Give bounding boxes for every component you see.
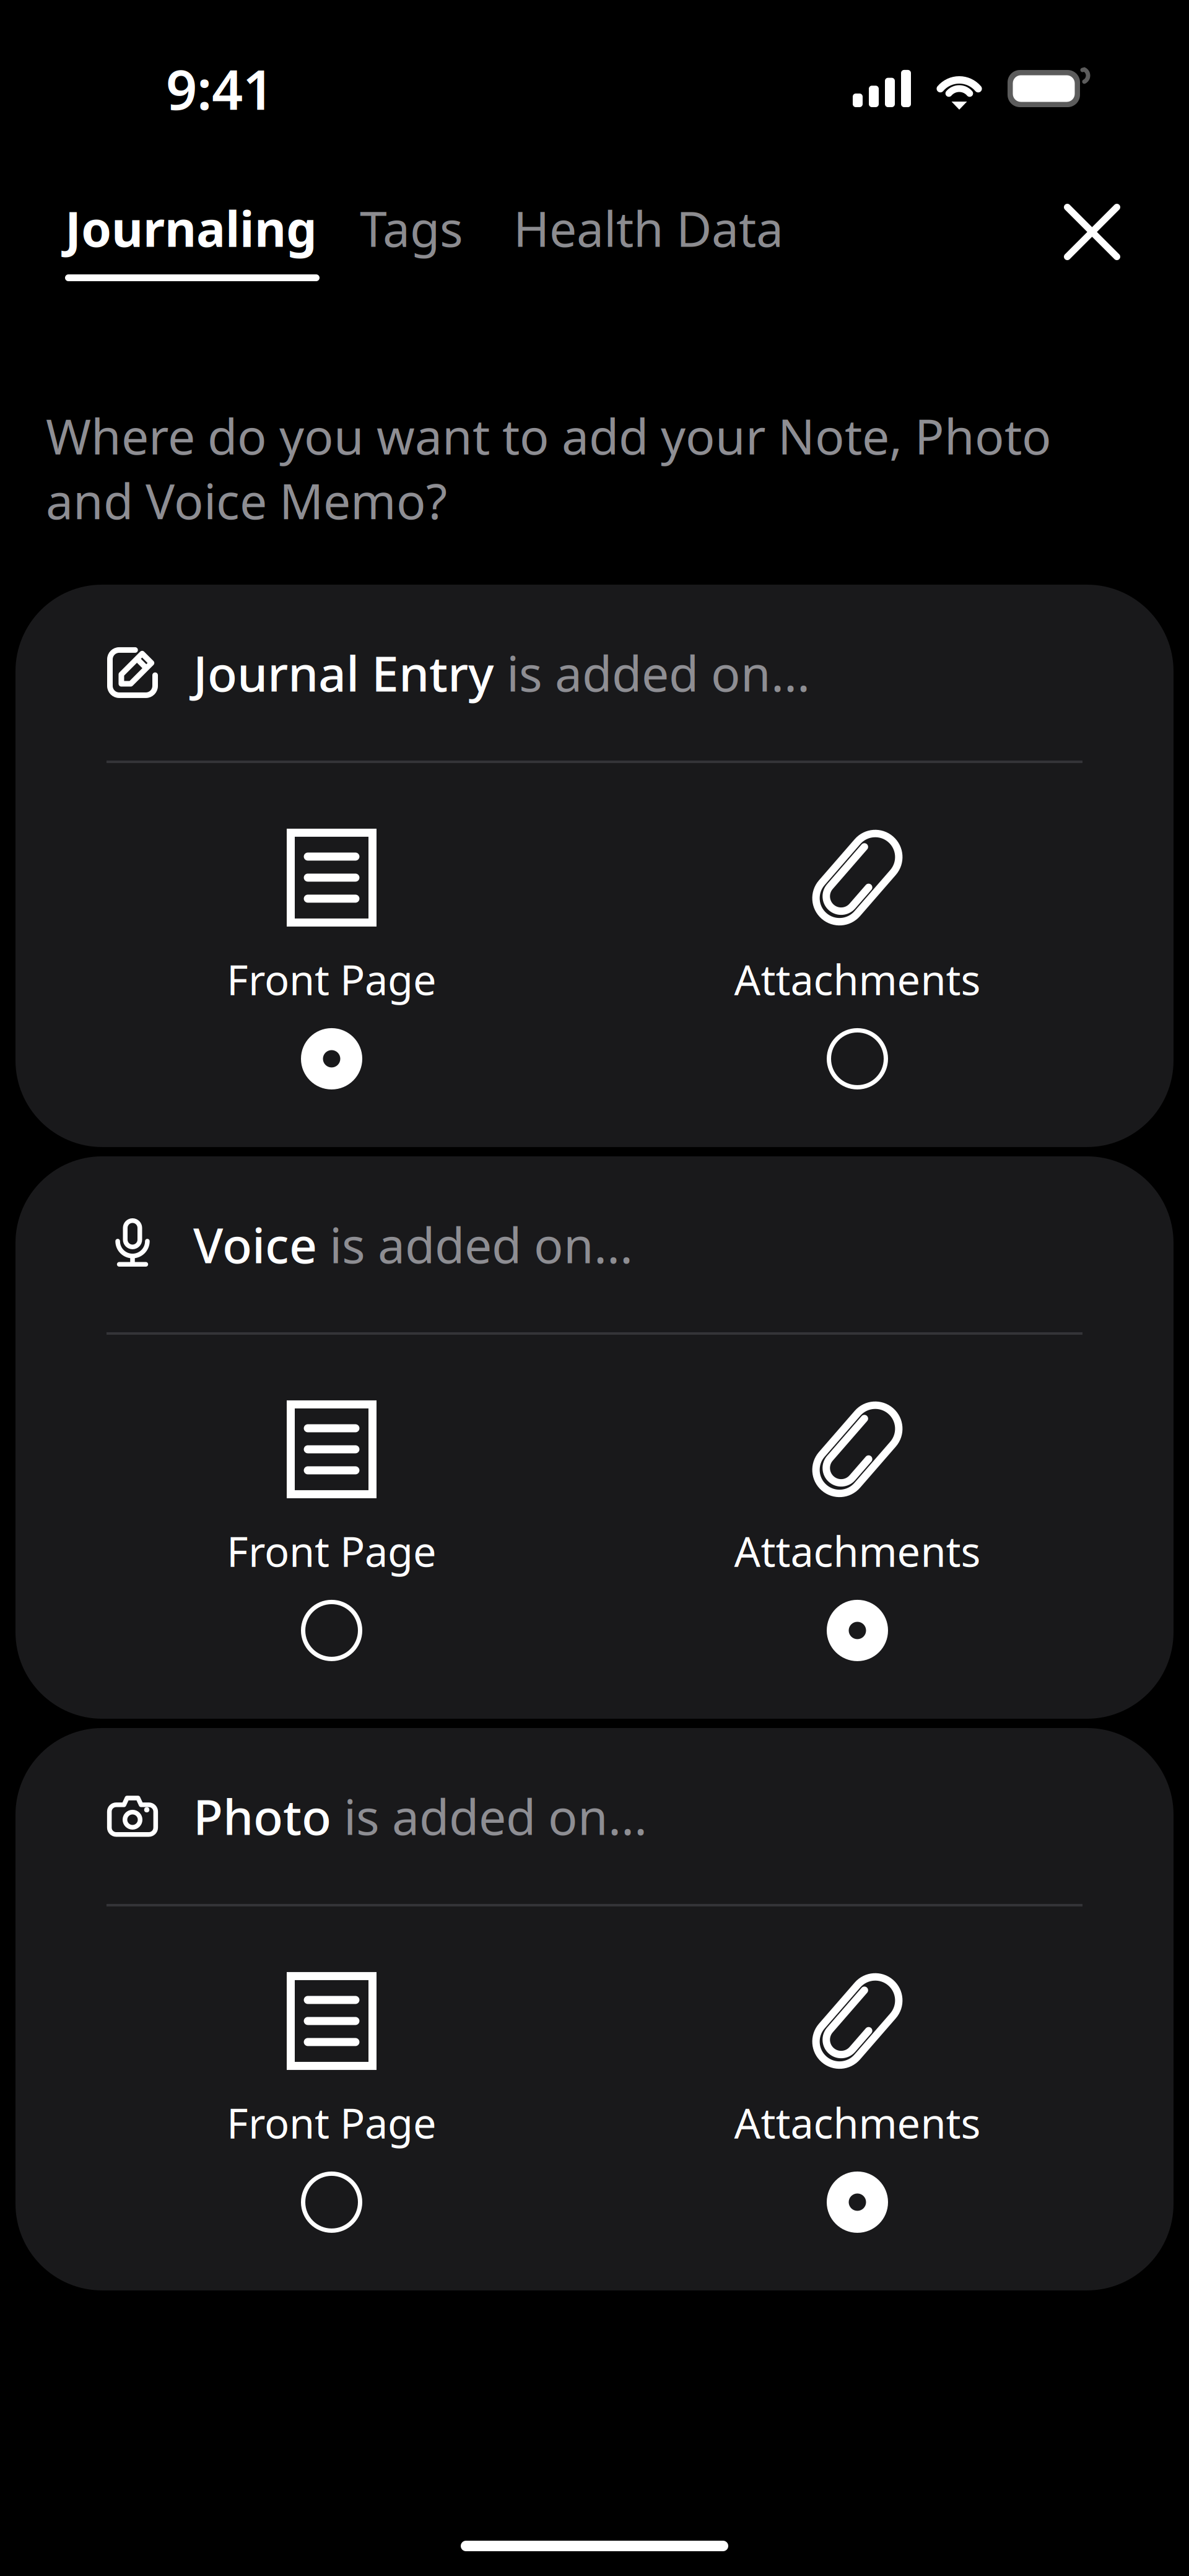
staticText: Voice [193,1212,317,1277]
button[interactable]: Attachments [594,1400,1120,1661]
staticText: Journal Entry [193,640,494,705]
button[interactable]: Journaling [65,204,323,281]
staticText: Tags [360,196,463,260]
staticText: Front Page [227,2095,437,2150]
button[interactable]: Health Data [513,204,802,281]
button[interactable]: Attachments [594,1972,1120,2233]
staticText: Attachments [734,2095,981,2150]
button[interactable]: Close [1064,204,1120,260]
button[interactable]: Front Page [69,1400,594,1661]
staticText: Front Page [227,1523,437,1578]
staticText: Where do you want to add your Note, Phot… [46,403,1052,533]
staticText: Attachments [734,952,981,1007]
staticText: 9:41 [166,52,274,125]
staticText: Journaling [65,196,317,260]
staticText: Front Page [227,952,437,1007]
staticText: Health Data [513,196,783,260]
staticText: Attachments [734,1523,981,1578]
staticText: is added on... [331,1784,647,1848]
button[interactable]: Attachments [594,829,1120,1089]
button[interactable]: Front Page [69,829,594,1089]
staticText: is added on... [317,1212,633,1277]
staticText: is added on... [494,640,810,705]
button[interactable]: Tags [360,204,468,281]
staticText: Photo [193,1784,331,1848]
button[interactable]: Front Page [69,1972,594,2233]
